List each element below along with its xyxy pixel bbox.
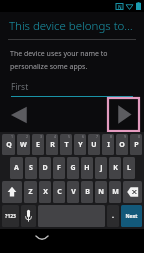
button[interactable]: 5 [60,134,72,155]
button[interactable]: S [25,157,37,179]
button[interactable]: J [95,157,107,179]
staticText: J [100,163,103,173]
staticText: R [50,140,55,150]
staticText: N [98,187,104,197]
button[interactable]: 8 [102,134,114,155]
staticText: K [113,163,118,173]
staticText: E [36,140,40,150]
button[interactable]: 0 [130,134,142,155]
button[interactable]: Shift [2,181,22,203]
button[interactable]: Next [121,205,142,227]
staticText: personalize some apps. [10,62,88,72]
staticText: 5 [68,134,71,139]
staticText: H [84,163,90,173]
staticText: ?123 [5,213,16,220]
staticText: C [57,187,62,197]
staticText: Z [28,187,33,197]
button[interactable]: M [109,181,121,203]
staticText: X [43,187,48,197]
button[interactable]: F [53,157,65,179]
staticText: L [127,163,131,173]
button[interactable]: B [81,181,93,203]
button[interactable]: Backspace [123,181,142,203]
button[interactable]: 2 [17,134,30,155]
staticText: Y [78,140,83,150]
staticText: N [118,4,122,10]
staticText: G [70,163,76,173]
button[interactable]: H [81,157,93,179]
staticText: M [112,187,119,197]
button[interactable]: . [107,205,119,227]
staticText: This device belongs to… [9,18,133,34]
button[interactable]: Back [8,102,32,128]
button[interactable]: D [39,157,51,179]
staticText: W [20,140,27,150]
staticText: Q [6,140,12,150]
staticText: P [134,140,139,150]
button[interactable]: L [123,157,135,179]
staticText: 4 [54,134,57,139]
staticText: I [107,140,110,150]
other: NFC [116,3,123,10]
staticText: 1 [11,134,14,139]
staticText: T [64,140,69,150]
button[interactable]: 1 [2,134,15,155]
button[interactable]: 9 [116,134,128,155]
staticText: First [11,81,29,93]
staticText: The device uses your name to [10,49,108,59]
button[interactable]: 7 [88,134,100,155]
button[interactable]: ?123 [2,205,19,227]
button[interactable]: C [53,181,65,203]
button[interactable]: 6 [74,134,86,155]
button[interactable]: A [10,157,23,179]
button[interactable]: V [67,181,79,203]
button[interactable]: K [109,157,121,179]
other: Battery [136,2,141,10]
staticText: 9 [124,134,127,139]
button[interactable]: Voice input [21,205,36,227]
staticText: 7 [96,134,99,139]
staticText: 8 [110,134,113,139]
other: Wi-Fi [126,3,133,10]
staticText: 3 [40,134,43,139]
button[interactable]: Hide keyboard [34,233,50,243]
staticText: U [91,140,97,150]
staticText: Next [125,213,138,220]
staticText: D [42,163,48,173]
staticText: B [85,187,90,197]
staticText: F [57,163,61,173]
button[interactable]: G [67,157,79,179]
button[interactable]: First [11,81,133,97]
staticText: O [119,140,125,150]
staticText: 2 [26,134,29,139]
button[interactable]: Z [24,181,37,203]
staticText: . [112,211,114,221]
staticText: S [29,163,33,173]
button[interactable]: X [39,181,51,203]
staticText: 6 [82,134,85,139]
button[interactable]: Next [108,98,139,131]
button[interactable]: 4 [46,134,58,155]
staticText: 0 [138,134,141,139]
button[interactable]: N [95,181,107,203]
button[interactable]: 3 [32,134,44,155]
staticText: V [71,187,76,197]
staticText: A [14,163,19,173]
